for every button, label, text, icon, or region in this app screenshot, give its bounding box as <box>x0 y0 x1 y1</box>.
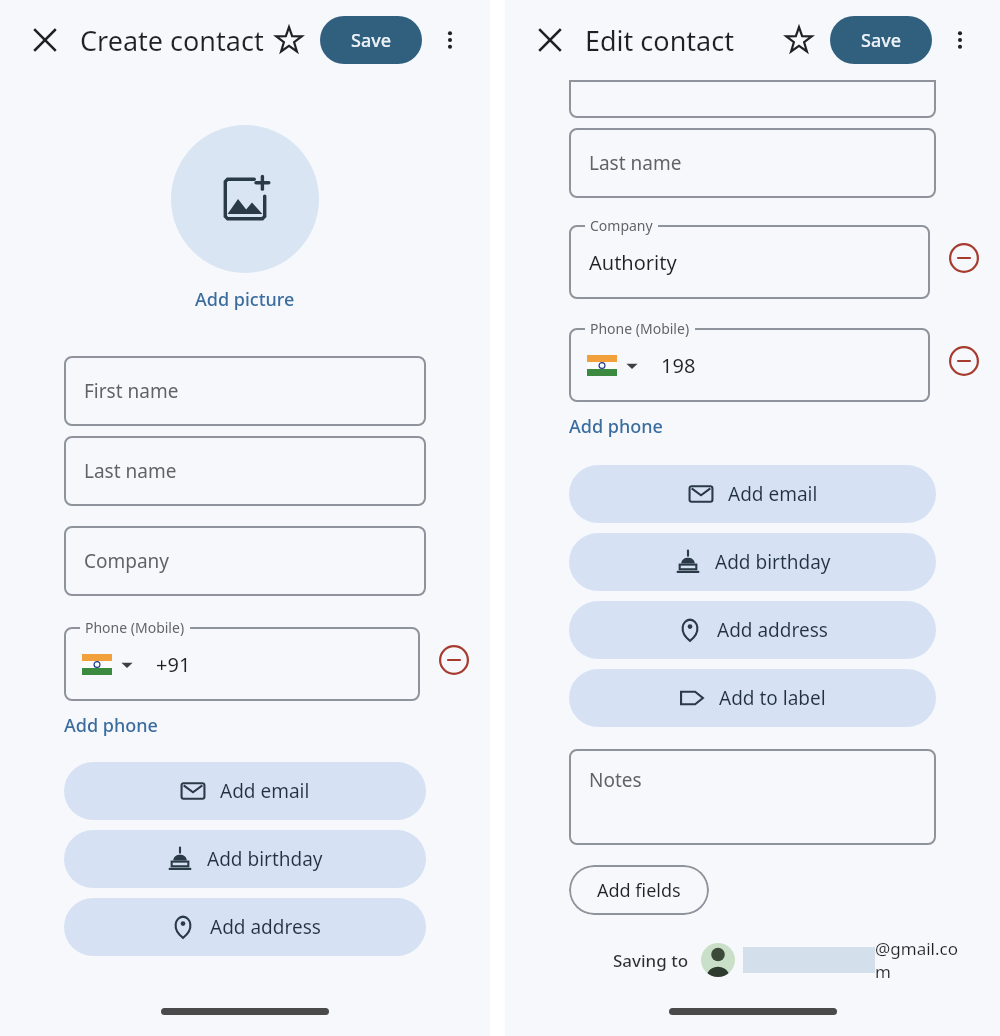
staticText: Company <box>84 548 170 574</box>
button[interactable]: Select country <box>64 627 420 701</box>
button[interactable]: Add email <box>64 762 426 820</box>
button[interactable]: Add birthday <box>569 533 936 591</box>
button[interactable]: Favorite <box>268 19 310 61</box>
button[interactable]: Last name <box>569 128 936 198</box>
staticText: Last name <box>589 150 682 176</box>
button[interactable]: Save <box>320 16 422 64</box>
staticText: Add fields <box>597 878 681 903</box>
staticText: First name <box>84 378 179 404</box>
staticText: Saving to <box>613 949 689 972</box>
staticText: +91 <box>156 651 191 678</box>
button[interactable]: Remove Company <box>944 238 984 278</box>
button[interactable]: Add picture <box>0 287 490 312</box>
button[interactable]: Close <box>531 21 569 59</box>
staticText: Add address <box>717 617 828 643</box>
staticText: Add birthday <box>715 549 831 575</box>
button[interactable]: Add fields <box>569 865 709 915</box>
button[interactable]: Notes <box>569 749 936 845</box>
staticText: Add email <box>220 778 310 804</box>
staticText: Phone (Mobile) <box>590 319 690 338</box>
button[interactable]: Select country <box>82 654 134 675</box>
button[interactable]: Add to label <box>569 669 936 727</box>
button[interactable]: Saving to <box>613 937 960 983</box>
button[interactable]: Last name <box>64 436 426 506</box>
button[interactable]: Company <box>64 526 426 596</box>
button[interactable] <box>569 80 936 118</box>
staticText: Add address <box>210 914 321 940</box>
button[interactable]: Remove phone <box>434 640 474 680</box>
staticText: @gmail.com <box>875 937 960 983</box>
button[interactable]: First name <box>64 356 426 426</box>
staticText: Save <box>861 28 902 53</box>
button[interactable]: Favorite <box>778 19 820 61</box>
button[interactable]: More options <box>430 20 470 60</box>
staticText: Phone (Mobile) <box>85 618 185 637</box>
button[interactable]: Add address <box>569 601 936 659</box>
button[interactable]: Select country <box>587 355 639 376</box>
staticText: Notes <box>589 767 642 793</box>
staticText: Create contact <box>80 22 264 59</box>
button[interactable]: Authority <box>569 225 930 299</box>
staticText: 198 <box>661 352 696 379</box>
button[interactable]: Add email <box>569 465 936 523</box>
staticText: Add picture <box>195 287 295 312</box>
button[interactable]: Add phone <box>64 713 158 738</box>
button[interactable]: More options <box>940 20 980 60</box>
button[interactable]: Add birthday <box>64 830 426 888</box>
staticText: Add birthday <box>207 846 323 872</box>
button[interactable]: Select country <box>569 328 930 402</box>
button[interactable]: Add picture <box>171 125 319 273</box>
button[interactable]: Add address <box>64 898 426 956</box>
staticText: Save <box>351 28 392 53</box>
staticText: Authority <box>589 249 677 276</box>
staticText: Add email <box>728 481 818 507</box>
staticText: Add phone <box>569 414 663 439</box>
staticText: Add to label <box>719 685 826 711</box>
button[interactable]: Add phone <box>569 414 663 439</box>
button[interactable]: Remove phone <box>944 341 984 381</box>
button[interactable]: Close <box>26 21 64 59</box>
staticText: Add phone <box>64 713 158 738</box>
button[interactable]: Save <box>830 16 932 64</box>
staticText: Edit contact <box>585 22 734 59</box>
staticText: Last name <box>84 458 177 484</box>
staticText: Company <box>590 216 653 235</box>
